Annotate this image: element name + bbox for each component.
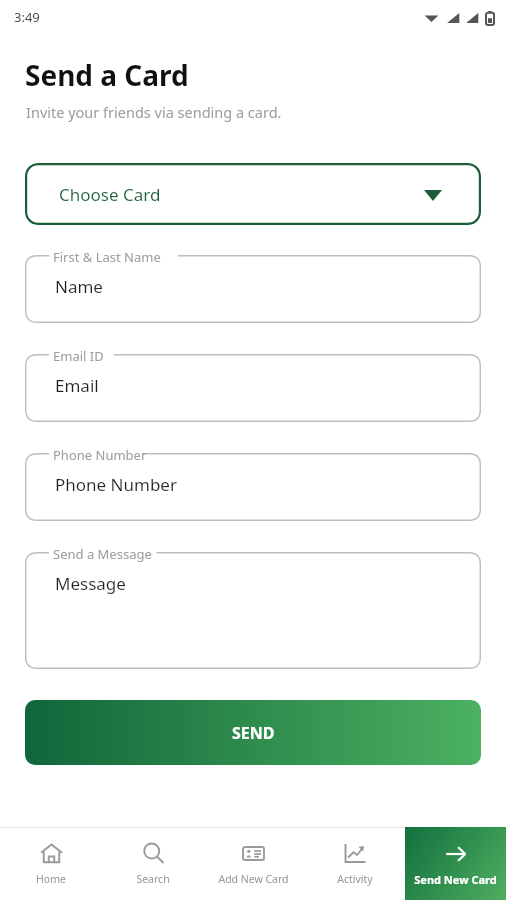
staticText: Invite your friends via sending a card. <box>26 102 282 122</box>
button[interactable]: SEND <box>25 700 481 765</box>
staticText: Name <box>55 275 103 298</box>
button[interactable]: Email ID <box>25 354 481 422</box>
staticText: 3:49 <box>14 8 40 26</box>
staticText: Send a Message <box>53 545 152 563</box>
staticText: Email <box>55 374 99 397</box>
button[interactable]: Choose Card <box>25 163 481 225</box>
staticText: Choose Card <box>59 183 161 206</box>
button[interactable]: Activity <box>304 827 405 900</box>
staticText: Home <box>36 872 66 886</box>
staticText: Activity <box>337 872 373 886</box>
staticText: Search <box>136 872 170 886</box>
button[interactable]: Phone Number <box>25 453 481 521</box>
button[interactable]: Search <box>102 827 203 900</box>
staticText: SEND <box>232 722 275 744</box>
staticText: Send New Card <box>414 872 497 887</box>
button[interactable]: Send New Card <box>405 827 506 900</box>
staticText: Email ID <box>53 347 104 365</box>
button[interactable]: Send a Message <box>25 552 481 669</box>
staticText: Message <box>55 572 126 595</box>
staticText: First & Last Name <box>53 248 161 266</box>
staticText: Add New Card <box>218 872 289 886</box>
staticText: Phone Number <box>53 446 147 464</box>
button[interactable]: First & Last Name <box>25 255 481 323</box>
staticText: Phone Number <box>55 473 177 496</box>
staticText: Send a Card <box>25 56 189 94</box>
button[interactable]: Add New Card <box>203 827 304 900</box>
button[interactable]: Home <box>0 827 102 900</box>
